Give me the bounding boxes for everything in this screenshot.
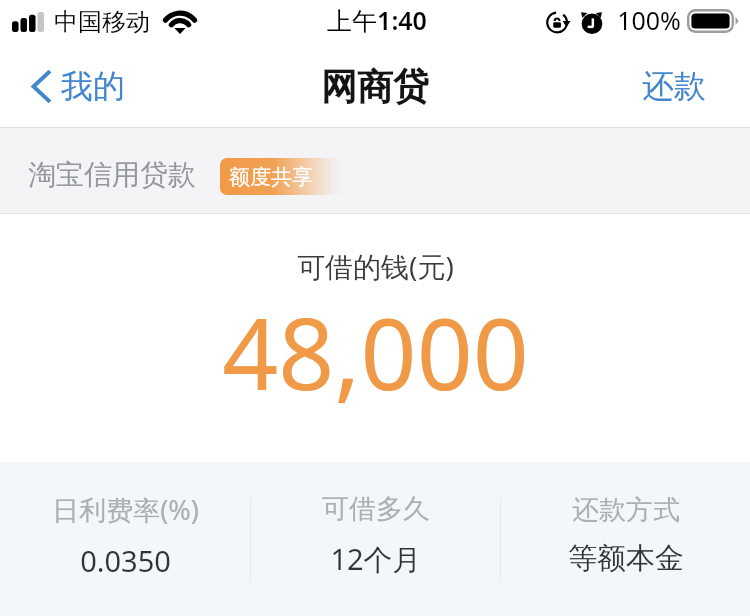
staticText: 日利费率(%) (52, 491, 199, 528)
staticText: 100% (617, 3, 681, 37)
staticText: 还款 (642, 66, 706, 106)
button[interactable]: 还款方式 (501, 462, 750, 616)
button[interactable]: 还款 (626, 58, 750, 114)
staticText: 额度共享 (229, 164, 313, 190)
staticText: 可借的钱(元) (297, 247, 454, 285)
staticText: 0.0350 (80, 541, 171, 580)
staticText: 可借多久 (322, 492, 430, 526)
staticText: 淘宝信用贷款 (28, 157, 196, 192)
staticText: 上午1:40 (327, 3, 427, 37)
button[interactable]: 可借多久 (251, 462, 500, 616)
staticText: 还款方式 (572, 493, 680, 527)
staticText: 等额本金 (568, 540, 684, 577)
staticText: 48,000 (222, 285, 529, 418)
staticText: 网商贷 (321, 64, 429, 109)
staticText: 我的 (61, 66, 125, 106)
button[interactable]: 日利费率(%) (0, 462, 250, 616)
staticText: 12个月 (330, 539, 422, 579)
button[interactable]: 额度共享 (220, 158, 346, 195)
button[interactable]: 返回 我的 (0, 58, 137, 114)
staticText: 中国移动 (54, 7, 150, 37)
